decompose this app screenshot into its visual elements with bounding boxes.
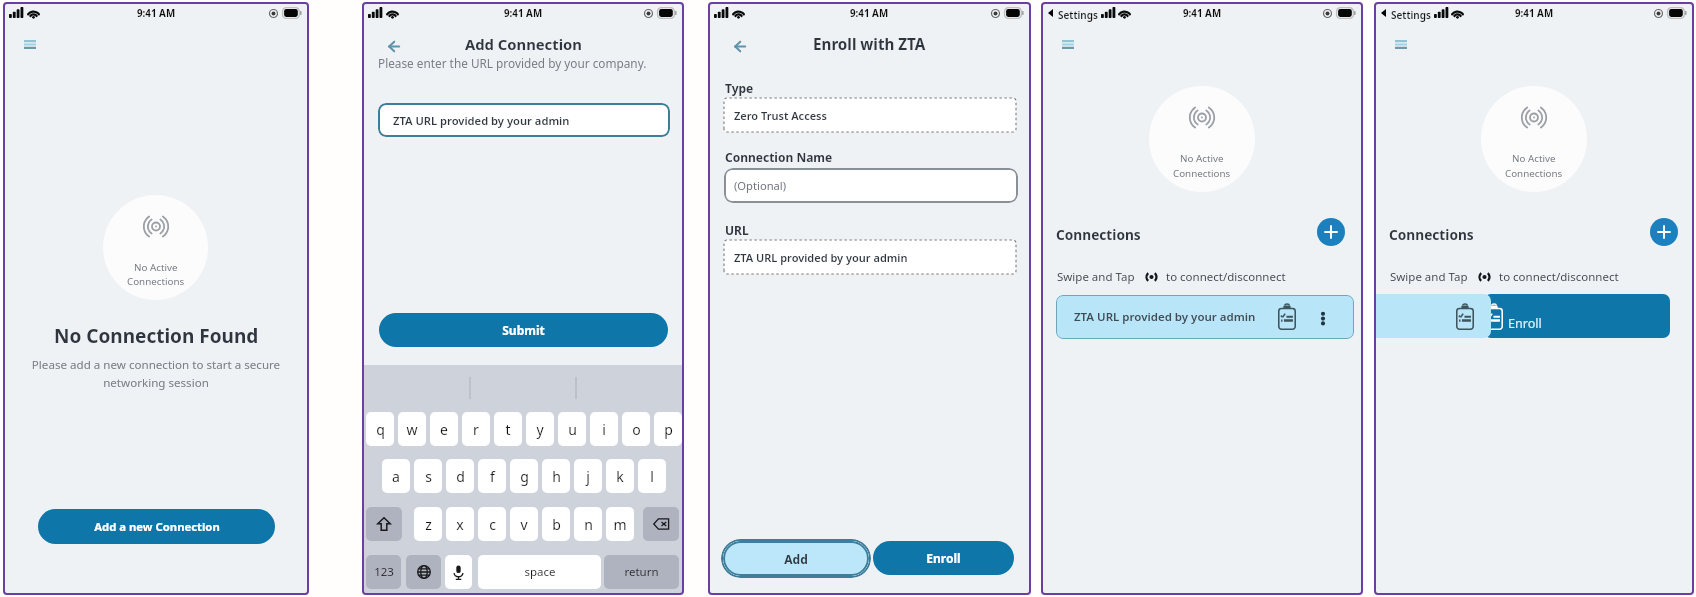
button[interactable]: More options bbox=[1315, 308, 1331, 328]
button[interactable]: r bbox=[462, 412, 490, 446]
staticText: No Active bbox=[1180, 152, 1224, 165]
staticText: Swipe and Tap bbox=[1057, 269, 1135, 285]
button[interactable]: Enroll bbox=[873, 541, 1014, 575]
button[interactable]: n bbox=[574, 507, 602, 541]
button[interactable]: b bbox=[542, 507, 570, 541]
button[interactable]: Change keyboard bbox=[406, 555, 441, 589]
button[interactable]: w bbox=[398, 412, 426, 446]
button[interactable]: space bbox=[478, 555, 601, 589]
button[interactable]: c bbox=[478, 507, 506, 541]
staticText: Swipe and Tap bbox=[1390, 269, 1468, 285]
button[interactable]: p bbox=[654, 412, 682, 446]
button[interactable]: j bbox=[574, 459, 602, 493]
staticText: ZTA URL provided by your admin bbox=[734, 250, 908, 265]
button[interactable]: Add connection bbox=[1650, 218, 1678, 246]
button[interactable]: Add bbox=[723, 541, 869, 576]
staticText: ZTA URL provided by your admin bbox=[393, 113, 570, 128]
button[interactable]: Back bbox=[728, 34, 752, 58]
staticText: Enroll with ZTA bbox=[813, 34, 926, 55]
button[interactable]: v bbox=[510, 507, 538, 541]
staticText: Connections bbox=[127, 275, 185, 288]
staticText: 9:41 AM bbox=[1183, 7, 1222, 20]
staticText: Connections bbox=[1173, 167, 1231, 180]
button[interactable]: h bbox=[542, 459, 570, 493]
staticText: Please enter the URL provided by your co… bbox=[378, 55, 647, 71]
staticText: ZTA URL provided by your admin bbox=[1074, 309, 1256, 325]
button[interactable]: ZTA URL provided by your admin bbox=[724, 240, 1016, 274]
button[interactable]: Add a new Connection bbox=[38, 509, 275, 544]
button[interactable]: a bbox=[382, 459, 410, 493]
button[interactable]: s bbox=[414, 459, 442, 493]
staticText: c bbox=[489, 515, 496, 534]
staticText: x bbox=[456, 515, 464, 534]
button[interactable]: f bbox=[478, 459, 506, 493]
staticText: a bbox=[392, 467, 400, 486]
button[interactable]: y bbox=[526, 412, 554, 446]
staticText: Connections bbox=[1505, 167, 1563, 180]
staticText: 9:41 AM bbox=[1515, 7, 1554, 20]
button[interactable]: ZTA URL provided by your admin bbox=[378, 103, 670, 137]
staticText: return bbox=[624, 564, 659, 580]
button[interactable]: d bbox=[446, 459, 474, 493]
staticText: 9:41 AM bbox=[850, 7, 889, 20]
button[interactable]: Menu bbox=[1055, 33, 1081, 55]
button[interactable]: q bbox=[366, 412, 394, 446]
button[interactable]: Dictate bbox=[445, 555, 472, 589]
staticText: Connections bbox=[1056, 225, 1141, 244]
staticText: u bbox=[568, 420, 577, 439]
staticText: i bbox=[602, 420, 606, 439]
button[interactable]: (Optional) bbox=[724, 168, 1018, 203]
staticText: URL bbox=[725, 222, 749, 238]
button[interactable]: k bbox=[606, 459, 634, 493]
button[interactable]: g bbox=[510, 459, 538, 493]
button[interactable]: i bbox=[590, 412, 618, 446]
button[interactable]: Zero Trust Access bbox=[724, 98, 1016, 132]
button[interactable]: Menu bbox=[1388, 33, 1414, 55]
staticText: Connections bbox=[1389, 225, 1474, 244]
staticText: to connect/disconnect bbox=[1499, 269, 1619, 285]
staticText: to connect/disconnect bbox=[1166, 269, 1286, 285]
staticText: Type bbox=[725, 80, 754, 96]
staticText: z bbox=[425, 515, 432, 534]
staticText: Add bbox=[784, 551, 808, 567]
staticText: Add Connection bbox=[465, 34, 582, 54]
button[interactable]: l bbox=[638, 459, 666, 493]
button[interactable]: Connection bbox=[1376, 294, 1491, 338]
staticText: Add a new Connection bbox=[94, 519, 220, 534]
staticText: r bbox=[473, 420, 479, 439]
staticText: v bbox=[520, 515, 528, 534]
button[interactable]: e bbox=[430, 412, 458, 446]
staticText: g bbox=[520, 467, 529, 486]
button[interactable]: x bbox=[446, 507, 474, 541]
staticText: b bbox=[552, 515, 561, 534]
staticText: f bbox=[490, 467, 495, 486]
button[interactable]: o bbox=[622, 412, 650, 446]
staticText: 9:41 AM bbox=[504, 7, 543, 20]
staticText: j bbox=[586, 467, 590, 486]
staticText: p bbox=[664, 420, 673, 439]
staticText: Settings bbox=[1391, 8, 1431, 22]
button[interactable]: return bbox=[604, 555, 679, 589]
staticText: Enroll bbox=[926, 550, 961, 566]
button[interactable]: Menu bbox=[17, 33, 43, 55]
staticText: Submit bbox=[502, 322, 545, 338]
button[interactable]: u bbox=[558, 412, 586, 446]
staticText: q bbox=[376, 420, 385, 439]
button[interactable]: Shift bbox=[366, 507, 402, 541]
button[interactable]: Enroll bbox=[1484, 294, 1670, 338]
button[interactable]: 123 bbox=[366, 555, 401, 589]
staticText: Zero Trust Access bbox=[734, 108, 827, 123]
staticText: w bbox=[406, 420, 418, 439]
button[interactable]: ZTA URL provided by your admin bbox=[1056, 295, 1354, 339]
button[interactable]: z bbox=[414, 507, 442, 541]
button[interactable]: Submit bbox=[379, 313, 668, 347]
button[interactable]: t bbox=[494, 412, 522, 446]
button[interactable]: Backspace bbox=[643, 507, 679, 541]
button[interactable]: m bbox=[606, 507, 634, 541]
staticText: y bbox=[536, 420, 544, 439]
button[interactable]: Back bbox=[382, 34, 406, 58]
staticText: t bbox=[505, 420, 511, 439]
staticText: No Active bbox=[1512, 152, 1556, 165]
button[interactable]: Add connection bbox=[1317, 218, 1345, 246]
staticText: Connection Name bbox=[725, 149, 833, 165]
